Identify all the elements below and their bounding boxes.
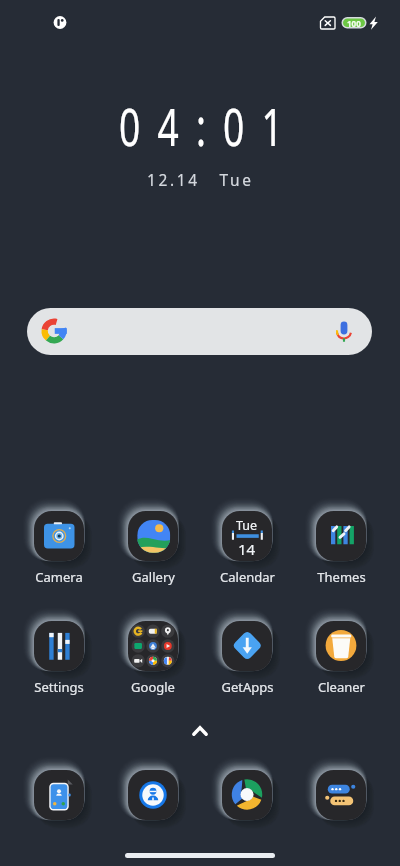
button[interactable]: Settings [12, 609, 106, 701]
button[interactable]: Cleaner [294, 609, 388, 701]
button[interactable]: Camera [12, 499, 106, 591]
button[interactable]: Chrome [210, 758, 284, 832]
staticText: 04:01 [119, 90, 300, 160]
staticText: Tue [236, 517, 258, 534]
button[interactable]: Search [27, 308, 372, 355]
staticText: 14 [238, 539, 256, 559]
staticText: Google [131, 678, 175, 696]
button[interactable]: Open app drawer [0, 718, 400, 744]
staticText: GetApps [221, 678, 274, 696]
button[interactable]: Phone [116, 758, 190, 832]
staticText: Themes [317, 568, 366, 586]
staticText: Calendar [220, 568, 275, 586]
button[interactable]: Messages [304, 758, 378, 832]
staticText: Cleaner [318, 678, 365, 696]
button[interactable]: Contacts [22, 758, 96, 832]
staticText: Camera [35, 568, 83, 586]
button[interactable]: GetApps [200, 609, 294, 701]
button[interactable]: Gallery [106, 499, 200, 591]
staticText: 100 [347, 18, 361, 29]
staticText: 12.14 Tue [147, 169, 254, 190]
button[interactable]: Google [106, 609, 200, 701]
button[interactable]: Themes [294, 499, 388, 591]
staticText: Gallery [132, 568, 175, 586]
staticText: Settings [34, 678, 84, 696]
button[interactable]: Tue [200, 499, 294, 591]
